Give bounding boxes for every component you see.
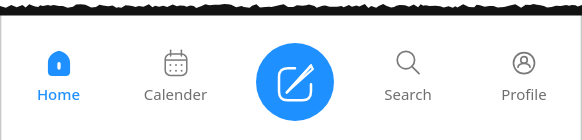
button[interactable]: Search	[350, 16, 466, 140]
staticText: Search	[350, 84, 466, 104]
staticText: Calender	[117, 84, 234, 104]
button[interactable]: Profile	[466, 16, 582, 140]
button[interactable]: Calender	[117, 16, 234, 140]
staticText: Home	[0, 84, 117, 104]
button[interactable]: Compose new	[256, 43, 334, 121]
button[interactable]: Home	[0, 16, 117, 140]
staticText: Profile	[466, 84, 582, 104]
